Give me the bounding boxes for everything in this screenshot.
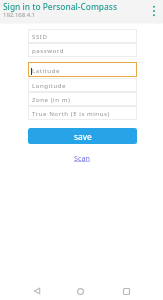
button[interactable]: password (28, 43, 137, 57)
staticText: Longitude (32, 81, 67, 89)
button[interactable]: save (28, 128, 137, 144)
button[interactable]: Scan (74, 153, 90, 163)
button[interactable]: Longitude (28, 78, 137, 92)
button[interactable]: More options (145, 2, 163, 20)
staticText: 192.168.4.1 (3, 11, 36, 19)
staticText: True North (E is minus) (32, 109, 110, 117)
button[interactable]: SSID (28, 29, 137, 43)
staticText: password (32, 46, 65, 54)
button[interactable]: Recents (116, 281, 137, 300)
button[interactable]: Home (70, 281, 91, 300)
staticText: Sign in to Personal-Compass (3, 1, 118, 12)
staticText: SSID (32, 32, 48, 40)
button[interactable]: Latitude (28, 62, 137, 77)
button[interactable]: True North (E is minus) (28, 106, 137, 120)
button[interactable]: Zone (in m) (28, 92, 137, 106)
staticText: Latitude (32, 66, 60, 74)
staticText: Zone (in m) (32, 95, 71, 103)
button[interactable]: Back (26, 280, 47, 300)
staticText: save (74, 131, 92, 142)
